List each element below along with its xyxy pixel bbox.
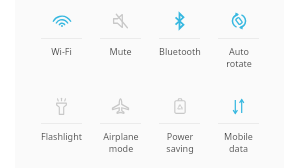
button[interactable]: Airplane mode — [91, 88, 150, 168]
button[interactable]: Wi-Fi — [32, 3, 91, 88]
button[interactable]: Auto rotate — [209, 3, 268, 88]
button[interactable]: Mute — [91, 3, 150, 88]
staticText: Power saving — [166, 130, 194, 155]
staticText: Flashlight — [41, 130, 82, 142]
staticText: Mobile data — [224, 130, 253, 155]
button[interactable]: Bluetooth — [150, 3, 209, 88]
staticText: Bluetooth — [159, 45, 201, 57]
button[interactable]: Flashlight — [32, 88, 91, 168]
staticText: Mute — [109, 45, 132, 57]
staticText: Wi-Fi — [51, 45, 72, 57]
button[interactable]: Power saving — [150, 88, 209, 168]
staticText: Auto rotate — [226, 45, 252, 70]
staticText: Airplane mode — [103, 130, 139, 155]
button[interactable]: Mobile data — [209, 88, 268, 168]
